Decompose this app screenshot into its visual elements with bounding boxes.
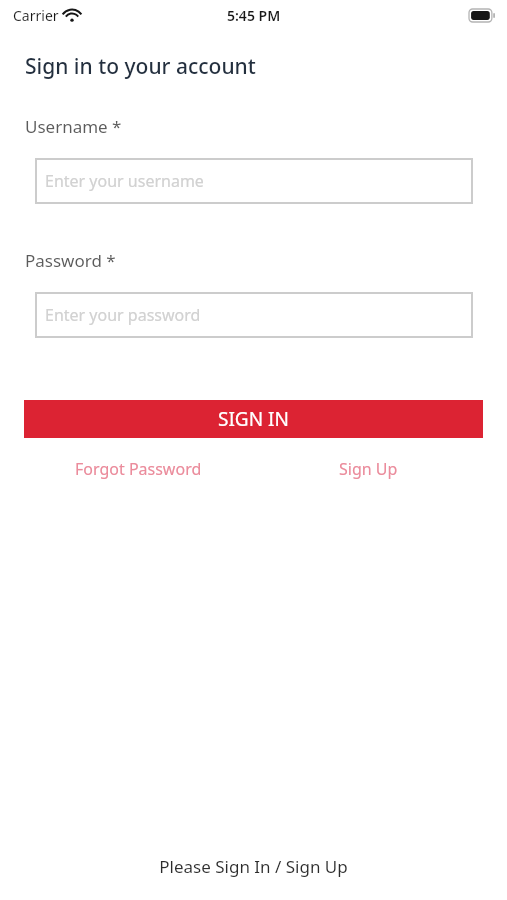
staticText: Sign in to your account <box>25 52 256 81</box>
staticText: Forgot Password <box>75 458 202 480</box>
button[interactable]: SIGN IN <box>24 400 483 438</box>
staticText: SIGN IN <box>218 406 289 432</box>
staticText: Password * <box>25 249 116 272</box>
button[interactable]: Sign Up <box>253 458 483 480</box>
staticText: Sign Up <box>339 458 398 480</box>
staticText: Enter your username <box>45 170 204 192</box>
button[interactable]: Forgot Password <box>24 458 253 480</box>
staticText: Carrier <box>13 6 59 25</box>
staticText: Username * <box>25 115 122 138</box>
button[interactable]: Enter your password <box>35 292 473 338</box>
button[interactable]: Enter your username <box>35 158 473 204</box>
staticText: Please Sign In / Sign Up <box>159 855 348 878</box>
staticText: 5:45 PM <box>227 6 281 25</box>
staticText: Enter your password <box>45 304 201 326</box>
